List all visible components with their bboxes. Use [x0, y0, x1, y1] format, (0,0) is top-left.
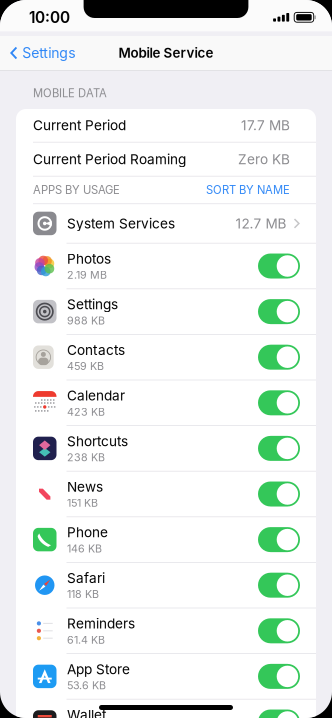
button[interactable]: Phone — [16, 517, 316, 562]
staticText: Reminders — [67, 615, 135, 632]
button[interactable]: Settings — [16, 289, 316, 334]
staticText: SORT BY NAME — [206, 183, 290, 197]
staticText: 2.19 MB — [67, 268, 107, 281]
staticText: News — [67, 479, 103, 495]
staticText: Mobile Service — [118, 45, 213, 61]
staticText: Safari — [67, 570, 105, 586]
staticText: Settings — [67, 296, 118, 313]
button[interactable]: Settings — [0, 36, 75, 70]
staticText: 17.7 MB — [241, 117, 290, 134]
button[interactable]: Contacts — [16, 335, 316, 380]
staticText: Shortcuts — [67, 433, 128, 449]
button[interactable]: App Store — [16, 654, 316, 699]
staticText: 151 KB — [67, 496, 98, 509]
staticText: Current Period Roaming — [33, 151, 186, 167]
staticText: 146 KB — [67, 542, 102, 555]
staticText: System Services — [67, 215, 175, 232]
staticText: 118 KB — [67, 588, 99, 601]
staticText: 238 KB — [67, 451, 105, 464]
staticText: 53.6 KB — [67, 679, 106, 692]
button[interactable]: Safari — [16, 563, 316, 608]
button[interactable]: Shortcuts — [16, 426, 316, 471]
staticText: Settings — [22, 44, 75, 61]
staticText: Contacts — [67, 342, 125, 358]
button[interactable]: Calendar — [16, 380, 316, 425]
button[interactable]: Wallet — [16, 700, 316, 718]
button[interactable]: Current Period — [16, 109, 316, 142]
staticText: Photos — [67, 251, 111, 267]
staticText: APPS BY USAGE — [33, 183, 120, 197]
staticText: Phone — [67, 524, 108, 541]
button[interactable]: News — [16, 472, 316, 516]
staticText: 988 KB — [67, 314, 105, 327]
button[interactable]: Reminders — [16, 608, 316, 653]
staticText: Current Period — [33, 117, 126, 134]
staticText: App Store — [67, 661, 130, 677]
staticText: MOBILE DATA — [33, 86, 107, 100]
button[interactable]: SORT BY NAME — [206, 177, 290, 203]
staticText: 61.4 KB — [67, 633, 105, 646]
staticText: 12.7 MB — [235, 215, 286, 232]
button[interactable]: System Services — [16, 204, 316, 243]
staticText: Calendar — [67, 387, 125, 404]
staticText: 10:00 — [29, 8, 70, 27]
staticText: 423 KB — [67, 405, 105, 418]
button[interactable]: Current Period Roaming — [16, 143, 316, 176]
staticText: Wallet — [67, 707, 106, 718]
staticText: Zero KB — [238, 151, 290, 167]
button[interactable]: Photos — [16, 244, 316, 288]
staticText: 459 KB — [67, 360, 104, 373]
